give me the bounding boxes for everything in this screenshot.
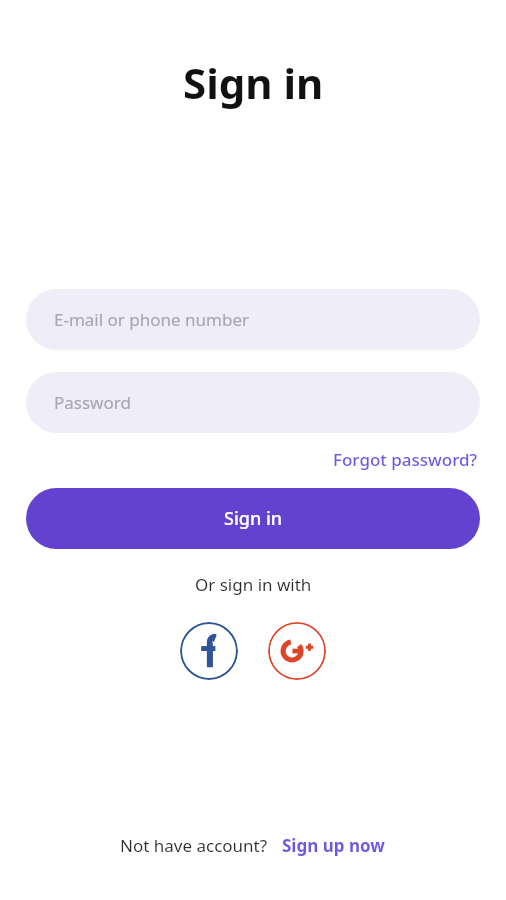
button[interactable]: Password xyxy=(26,372,480,433)
button[interactable]: Sign up now xyxy=(280,831,387,860)
staticText: Sign in xyxy=(224,506,283,531)
staticText: Forgot password? xyxy=(333,448,478,471)
button[interactable]: Forgot password? xyxy=(331,445,480,474)
staticText: Sign in xyxy=(183,54,324,111)
staticText: Or sign in with xyxy=(195,573,312,596)
staticText: Password xyxy=(54,391,131,414)
staticText: E-mail or phone number xyxy=(54,308,250,331)
button[interactable]: E-mail or phone number xyxy=(26,289,480,350)
staticText: Sign up now xyxy=(282,834,385,857)
staticText: Not have account? xyxy=(120,834,268,857)
button[interactable]: Sign in with Google xyxy=(268,622,326,680)
button[interactable]: Sign in xyxy=(26,488,480,549)
button[interactable]: Sign in with Facebook xyxy=(180,622,238,680)
